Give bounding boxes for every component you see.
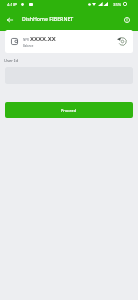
- staticText: 4:18: [7, 2, 16, 8]
- staticText: Balance: [23, 44, 34, 48]
- button[interactable]: Proceed: [5, 102, 133, 118]
- button[interactable]: Back: [0, 9, 20, 30]
- staticText: DishHome FIBERNET: [22, 15, 74, 22]
- staticText: User Id: [4, 58, 18, 64]
- staticText: 35%: [113, 2, 122, 8]
- staticText: XXXX.XX: [30, 35, 56, 43]
- staticText: NPR: [23, 38, 29, 42]
- button[interactable]: NPR: [5, 30, 133, 53]
- staticText: Proceed: [61, 108, 77, 113]
- button[interactable]: Refresh balance: [115, 35, 129, 49]
- button[interactable]: Info: [116, 9, 138, 30]
